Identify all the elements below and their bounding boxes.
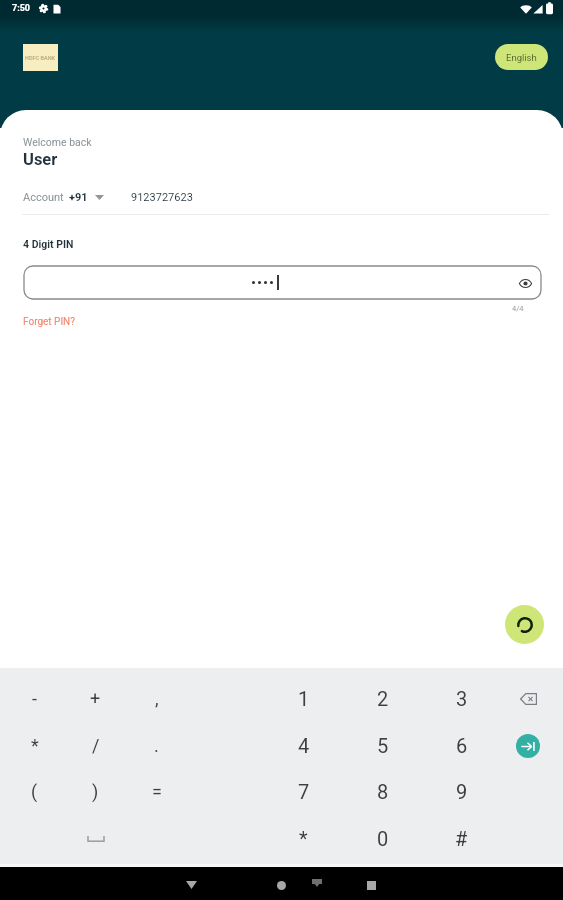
staticText: 1: [298, 687, 310, 710]
staticText: English: [506, 52, 537, 63]
button[interactable]: Forget PIN?: [23, 316, 75, 328]
button[interactable]: *: [264, 815, 343, 862]
button[interactable]: Backspace: [497, 675, 559, 722]
staticText: 3: [456, 687, 468, 710]
button[interactable]: #: [422, 815, 501, 862]
button[interactable]: Recent apps: [355, 869, 387, 900]
button[interactable]: *: [4, 722, 65, 769]
button[interactable]: Keyboard: [303, 869, 331, 897]
button[interactable]: .: [126, 722, 187, 769]
staticText: ): [92, 781, 99, 802]
staticText: Account: [23, 191, 64, 204]
button[interactable]: Show PIN: [24, 266, 541, 299]
button[interactable]: Show PIN: [517, 275, 533, 291]
button[interactable]: 0: [343, 815, 422, 862]
staticText: *: [31, 735, 39, 756]
button[interactable]: 5: [343, 722, 422, 769]
button[interactable]: (: [4, 768, 65, 815]
staticText: 2: [377, 687, 389, 710]
button[interactable]: ,: [126, 675, 187, 722]
staticText: (: [31, 781, 38, 802]
staticText: ,: [155, 688, 159, 709]
staticText: =: [152, 781, 162, 802]
button[interactable]: Enter: [497, 722, 559, 769]
button[interactable]: 1: [264, 675, 343, 722]
button[interactable]: 7: [264, 768, 343, 815]
button[interactable]: 2: [343, 675, 422, 722]
staticText: /: [92, 735, 100, 756]
staticText: Welcome back: [23, 136, 92, 148]
button[interactable]: =: [126, 768, 187, 815]
button[interactable]: 4: [264, 722, 343, 769]
button[interactable]: 3: [422, 675, 501, 722]
button[interactable]: 9: [422, 768, 501, 815]
button[interactable]: /: [65, 722, 126, 769]
staticText: 6: [456, 734, 468, 757]
button[interactable]: Home: [265, 869, 297, 900]
staticText: *: [299, 827, 308, 850]
staticText: 4/4: [512, 304, 524, 313]
staticText: +: [90, 688, 101, 709]
staticText: -: [32, 688, 37, 709]
button[interactable]: English: [495, 44, 548, 70]
staticText: +91: [69, 191, 88, 204]
staticText: 8: [377, 780, 389, 803]
button[interactable]: Choose country code: [92, 190, 107, 205]
staticText: 7: [298, 780, 310, 803]
button[interactable]: Bank logo: [23, 44, 58, 71]
staticText: HDFC BANK: [25, 55, 56, 61]
staticText: 5: [377, 734, 389, 757]
button[interactable]: Back: [175, 869, 207, 900]
staticText: 0: [377, 827, 389, 850]
staticText: 9: [456, 780, 468, 803]
button[interactable]: +: [65, 675, 126, 722]
button[interactable]: -: [4, 675, 65, 722]
staticText: .: [154, 735, 159, 756]
button[interactable]: 6: [422, 722, 501, 769]
button[interactable]: 8: [343, 768, 422, 815]
button[interactable]: Key: [65, 815, 126, 862]
staticText: 4: [298, 734, 310, 757]
staticText: #: [455, 827, 468, 850]
staticText: 9123727623: [131, 191, 193, 204]
staticText: 7:50: [12, 3, 31, 14]
staticText: User: [23, 150, 58, 169]
staticText: 4 Digit PIN: [23, 238, 74, 250]
button[interactable]: ): [65, 768, 126, 815]
button[interactable]: Refresh: [505, 605, 544, 644]
